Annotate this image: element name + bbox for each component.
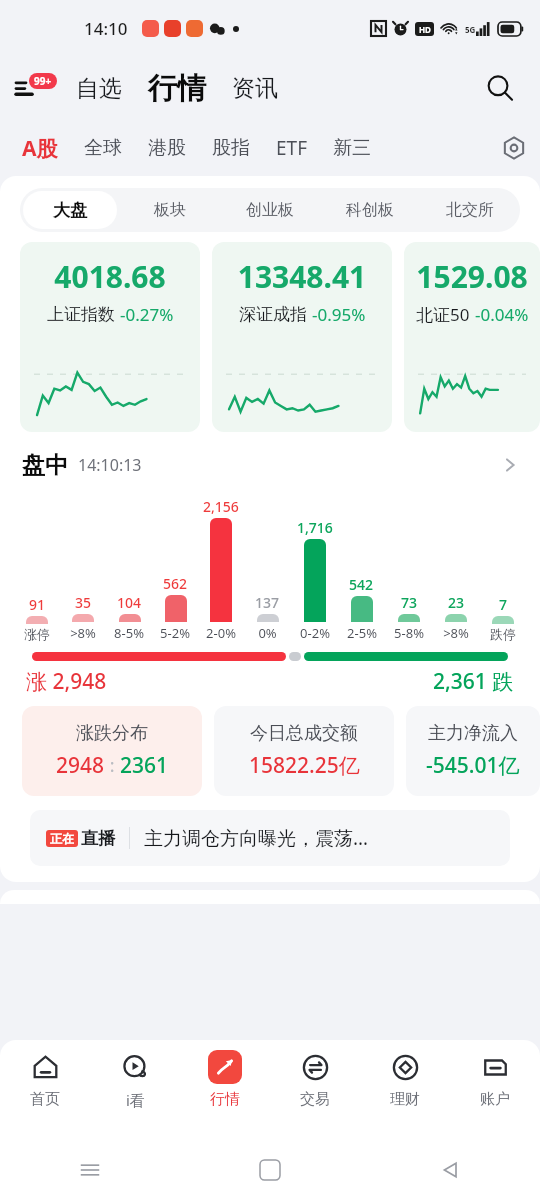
staticText: 自选 <box>76 74 122 103</box>
button[interactable]: 科创板 <box>323 191 417 229</box>
button[interactable]: 创业板 <box>223 191 317 229</box>
staticText: >8% <box>70 624 96 642</box>
staticText: 1529.08 <box>410 256 534 297</box>
staticText: 15822.25亿 <box>249 751 360 780</box>
button[interactable]: Recents <box>70 1150 110 1190</box>
staticText: 主力调仓方向曝光，震荡… <box>144 825 369 851</box>
button[interactable]: 4018.68 <box>20 242 200 432</box>
button[interactable]: 主力净流入 <box>406 706 540 796</box>
staticText: -0.27% <box>120 303 174 326</box>
staticText: 行情 <box>148 70 206 107</box>
button[interactable]: 13348.41 <box>212 242 392 432</box>
staticText: 涨停 <box>24 626 50 642</box>
button[interactable]: Home <box>250 1150 290 1190</box>
staticText: 深证成指 <box>239 304 307 325</box>
button[interactable]: 盘中 <box>0 440 540 490</box>
button[interactable]: 板块 <box>123 191 217 229</box>
staticText: 137 <box>255 593 280 612</box>
staticText: 2-5% <box>347 624 377 642</box>
staticText: 跌停 <box>490 626 516 642</box>
staticText: 14:10:13 <box>78 454 142 476</box>
button[interactable]: 自选 <box>72 68 126 109</box>
staticText: >8% <box>443 624 469 642</box>
staticText: 4018.68 <box>26 256 194 297</box>
staticText: 首页 <box>30 1090 60 1109</box>
staticText: HD <box>419 24 431 35</box>
staticText: 104 <box>117 593 142 612</box>
staticText: 73 <box>401 593 418 612</box>
staticText: 北交所 <box>446 200 494 220</box>
button[interactable]: 账户 <box>450 1050 540 1140</box>
staticText: 盘中 <box>22 451 68 480</box>
button[interactable]: i看 <box>90 1050 180 1140</box>
staticText: 创业板 <box>246 200 294 220</box>
staticText: 股指 <box>212 136 250 160</box>
staticText: 涨 2,948 <box>26 667 107 696</box>
staticText: 行情 <box>210 1090 240 1109</box>
button[interactable]: 首页 <box>0 1050 90 1140</box>
button[interactable]: 北交所 <box>423 191 517 229</box>
button[interactable]: A股 <box>18 126 62 171</box>
staticText: 99+ <box>34 74 52 88</box>
button[interactable]: 股指 <box>208 128 254 168</box>
button[interactable]: 行情 <box>180 1050 270 1140</box>
staticText: 7 <box>499 595 508 614</box>
button[interactable]: 涨跌分布 <box>22 706 202 796</box>
staticText: 正在 <box>50 831 74 846</box>
staticText: 2,361 跌 <box>433 667 514 696</box>
staticText: 理财 <box>390 1090 420 1109</box>
staticText: 23 <box>448 593 465 612</box>
button[interactable]: 行情 <box>144 66 210 111</box>
staticText: 直播 <box>81 828 115 849</box>
staticText: 2361 <box>120 751 169 780</box>
button[interactable]: 理财 <box>360 1050 450 1140</box>
staticText: 交易 <box>300 1090 330 1109</box>
staticText: 91 <box>29 595 46 614</box>
staticText: 0% <box>258 624 277 642</box>
staticText: 2-0% <box>206 624 236 642</box>
staticText: ETF <box>276 135 307 161</box>
staticText: -0.04% <box>475 303 529 326</box>
staticText: 5-8% <box>394 624 424 642</box>
staticText: i看 <box>126 1090 145 1110</box>
staticText: 5-2% <box>160 624 190 642</box>
staticText: 账户 <box>480 1090 510 1109</box>
staticText: 北证50 <box>416 303 470 326</box>
staticText: 2,156 <box>203 497 239 516</box>
button[interactable]: ETF <box>272 127 311 169</box>
button[interactable]: 大盘 <box>23 191 117 229</box>
staticText: 上证指数 <box>47 304 115 325</box>
button[interactable]: 今日总成交额 <box>214 706 394 796</box>
staticText: : <box>105 753 120 778</box>
button[interactable]: 港股 <box>144 128 190 168</box>
staticText: 35 <box>75 593 92 612</box>
button[interactable]: Menu <box>16 67 58 109</box>
staticText: 资讯 <box>232 74 278 103</box>
staticText: 板块 <box>154 200 186 220</box>
button[interactable]: Search <box>478 66 522 110</box>
staticText: 2948 <box>56 751 105 780</box>
staticText: 全球 <box>84 136 122 160</box>
button[interactable]: 交易 <box>270 1050 360 1140</box>
button[interactable]: 资讯 <box>228 68 282 109</box>
staticText: 0-2% <box>300 624 330 642</box>
staticText: 14:10 <box>84 17 128 40</box>
button[interactable]: 新三 <box>329 128 375 168</box>
button[interactable]: Settings <box>496 130 532 166</box>
staticText: 涨跌分布 <box>76 722 148 745</box>
staticText: 港股 <box>148 136 186 160</box>
button[interactable]: 1529.08 <box>404 242 540 432</box>
button[interactable]: 全球 <box>80 128 126 168</box>
button[interactable]: Back <box>430 1150 470 1190</box>
staticText: A股 <box>22 134 58 163</box>
button[interactable]: 正在 <box>30 810 510 866</box>
staticText: 562 <box>163 574 188 593</box>
staticText: -0.95% <box>312 303 366 326</box>
staticText: 13348.41 <box>218 256 386 297</box>
staticText: 新三 <box>333 136 371 160</box>
staticText: 大盘 <box>53 200 87 221</box>
staticText: 5G <box>465 24 476 35</box>
staticText: 今日总成交额 <box>250 722 358 745</box>
staticText: 主力净流入 <box>428 722 518 745</box>
staticText: 542 <box>349 575 374 594</box>
